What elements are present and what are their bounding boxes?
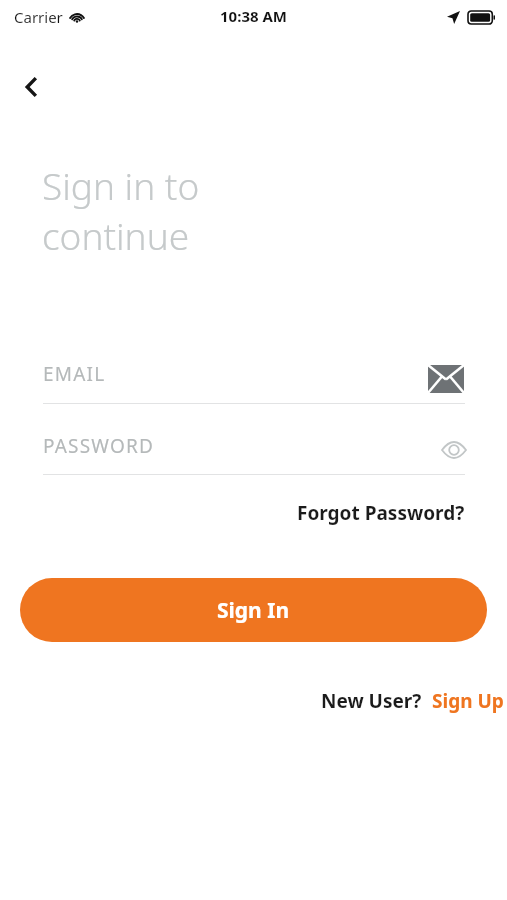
- staticText: Sign in to: [42, 160, 200, 210]
- staticText: 10:38 AM: [220, 6, 287, 26]
- staticText: Sign Up: [432, 688, 504, 714]
- button[interactable]: Sign Up: [431, 685, 505, 717]
- button[interactable]: Back: [8, 63, 56, 111]
- button[interactable]: EMAIL: [43, 352, 465, 404]
- staticText: Carrier: [14, 7, 63, 27]
- button[interactable]: Email: [422, 355, 470, 403]
- staticText: EMAIL: [43, 361, 106, 387]
- button[interactable]: Show password: [430, 426, 478, 474]
- staticText: continue: [42, 210, 190, 260]
- staticText: Sign In: [217, 596, 290, 625]
- staticText: PASSWORD: [43, 433, 155, 459]
- button[interactable]: Sign In: [20, 578, 487, 642]
- staticText: New User?: [321, 688, 422, 714]
- button[interactable]: Forgot Password?: [297, 496, 465, 530]
- staticText: Forgot Password?: [297, 500, 465, 526]
- button[interactable]: PASSWORD: [43, 424, 465, 475]
